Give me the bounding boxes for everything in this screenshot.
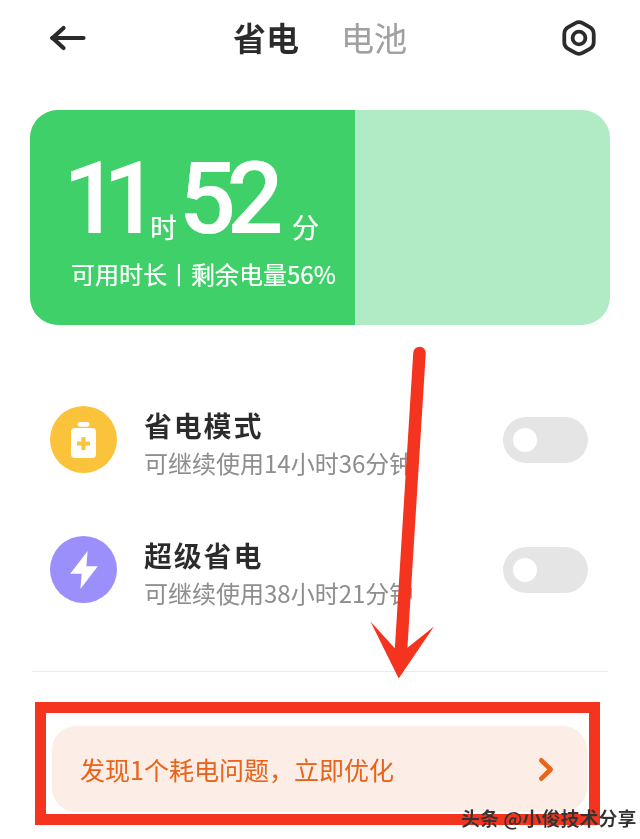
staticText: 分 (292, 207, 319, 246)
button[interactable]: 超级省电 (0, 536, 640, 620)
staticText: 省电 (233, 13, 299, 61)
staticText: 时 (150, 207, 177, 246)
button[interactable]: Settings (553, 12, 605, 64)
staticText: 可继续使用14小时36分钟 (144, 445, 414, 480)
button[interactable]: 省电 (228, 10, 304, 64)
button[interactable]: 发现1个耗电问题，立即优化 (52, 726, 587, 812)
button[interactable]: 省电模式 (0, 406, 640, 490)
staticText: 可用时长丨剩余电量56% (71, 256, 336, 291)
staticText: 11 (63, 140, 143, 257)
staticText: 省电模式 (144, 405, 264, 446)
staticText: 电池 (341, 13, 407, 61)
staticText: 52 (179, 140, 275, 257)
button[interactable]: 电池 (336, 10, 412, 64)
button[interactable]: 11 (30, 110, 610, 325)
staticText: 头条 @小俊技术分享 (461, 804, 637, 832)
button[interactable]: Toggle (503, 417, 588, 463)
button[interactable]: Toggle (503, 547, 588, 593)
staticText: 超级省电 (144, 535, 264, 576)
button[interactable]: Back (38, 12, 96, 64)
staticText: 发现1个耗电问题，立即优化 (80, 751, 394, 787)
staticText: 可继续使用38小时21分钟 (144, 575, 414, 610)
